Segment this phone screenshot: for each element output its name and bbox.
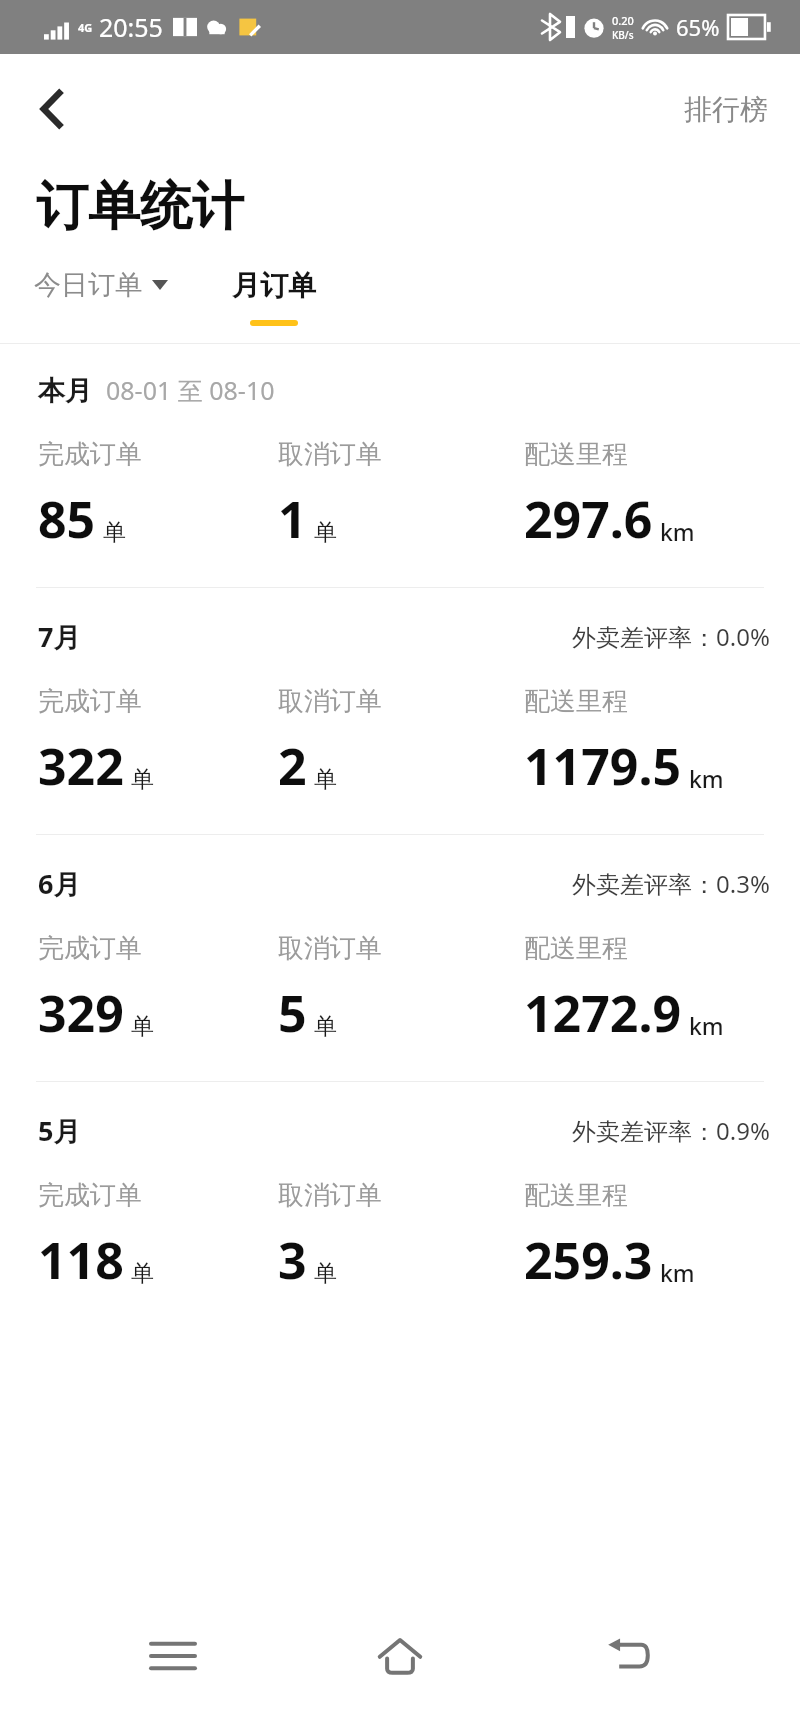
staticText: 取消订单 — [278, 438, 382, 471]
staticText: 20:55 — [99, 10, 163, 44]
button[interactable]: Home — [345, 1601, 455, 1711]
button[interactable]: Recent apps — [118, 1601, 228, 1711]
staticText: 完成订单 — [38, 685, 142, 718]
staticText: 297.6 — [524, 485, 653, 553]
staticText: km — [660, 1257, 695, 1288]
staticText: 0.20 — [612, 13, 634, 28]
staticText: 配送里程 — [524, 1179, 628, 1212]
staticText: km — [660, 516, 695, 547]
staticText: 配送里程 — [524, 685, 628, 718]
staticText: 排行榜 — [684, 92, 768, 127]
staticText: 329 — [38, 979, 124, 1047]
button[interactable]: Back — [22, 79, 82, 139]
staticText: 月订单 — [232, 268, 316, 303]
staticText: 单 — [103, 518, 126, 547]
button[interactable]: 今日订单 — [28, 258, 174, 312]
button[interactable]: 7月 — [0, 588, 800, 834]
staticText: 259.3 — [524, 1226, 653, 1294]
button[interactable]: 排行榜 — [678, 84, 774, 135]
staticText: 7月 — [38, 618, 81, 655]
staticText: km — [689, 1010, 724, 1041]
staticText: 单 — [131, 1012, 154, 1041]
staticText: 单 — [314, 1259, 337, 1288]
staticText: 单 — [314, 518, 337, 547]
staticText: 单 — [131, 1259, 154, 1288]
staticText: 6月 — [38, 865, 81, 902]
button[interactable]: Back — [573, 1601, 683, 1711]
staticText: 3 — [278, 1226, 307, 1294]
staticText: 取消订单 — [278, 1179, 382, 1212]
staticText: 单 — [131, 765, 154, 794]
button[interactable]: 5月 — [0, 1082, 800, 1328]
staticText: 完成订单 — [38, 932, 142, 965]
staticText: 2 — [278, 732, 307, 800]
staticText: 4G — [78, 20, 93, 35]
staticText: 外卖差评率：0.9% — [572, 1114, 770, 1147]
staticText: 118 — [38, 1226, 124, 1294]
button[interactable]: 6月 — [0, 835, 800, 1081]
staticText: 取消订单 — [278, 932, 382, 965]
staticText: 1272.9 — [524, 979, 682, 1047]
staticText: 外卖差评率：0.0% — [572, 620, 770, 653]
staticText: 今日订单 — [34, 268, 142, 302]
staticText: 订单统计 — [36, 174, 244, 240]
staticText: 1 — [278, 485, 307, 553]
staticText: 322 — [38, 732, 124, 800]
button[interactable]: 本月 — [0, 344, 800, 587]
staticText: km — [689, 763, 724, 794]
staticText: 5 — [278, 979, 307, 1047]
staticText: 外卖差评率：0.3% — [572, 867, 770, 900]
staticText: 单 — [314, 765, 337, 794]
staticText: 完成订单 — [38, 1179, 142, 1212]
staticText: 5月 — [38, 1112, 81, 1149]
staticText: 配送里程 — [524, 932, 628, 965]
staticText: 单 — [314, 1012, 337, 1041]
staticText: KB/s — [612, 28, 634, 42]
staticText: 取消订单 — [278, 685, 382, 718]
staticText: 65% — [676, 12, 720, 42]
staticText: 本月 — [38, 374, 92, 408]
staticText: 配送里程 — [524, 438, 628, 471]
staticText: 08-01 至 08-10 — [106, 373, 275, 407]
staticText: 85 — [38, 485, 96, 553]
button[interactable]: 月订单 — [226, 258, 322, 326]
staticText: 1179.5 — [524, 732, 682, 800]
staticText: 完成订单 — [38, 438, 142, 471]
